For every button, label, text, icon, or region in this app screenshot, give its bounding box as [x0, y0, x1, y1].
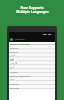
button[interactable]: Bahasa Indonesia [9, 73, 55, 77]
staticText: عربي [10, 54, 16, 57]
button[interactable]: Türkçe [9, 69, 55, 73]
staticText: Türkçe [10, 70, 18, 73]
staticText: Français [10, 86, 20, 89]
staticText: 9:41 AM [43, 33, 52, 36]
button[interactable]: हिंदी [9, 57, 55, 61]
staticText: বাংলা [10, 78, 14, 80]
staticText: Bahasa Indonesia [10, 74, 30, 77]
button[interactable]: Deutsch [9, 81, 55, 85]
button[interactable]: বাংলা [9, 77, 55, 81]
staticText: اردو [10, 66, 15, 69]
button[interactable]: Select Language [9, 42, 55, 45]
staticText: Multiple Languages [16, 9, 49, 13]
button[interactable]: اردو [9, 65, 55, 69]
staticText: Select Language [10, 42, 30, 45]
button[interactable]: عربي [9, 53, 55, 57]
staticText: Now Supports [20, 5, 44, 9]
button[interactable]: App icon [10, 38, 13, 41]
button[interactable]: Français [9, 85, 55, 89]
staticText: فارسی [10, 62, 18, 65]
staticText: हिंदी [10, 58, 14, 61]
button[interactable]: English [9, 49, 55, 53]
staticText: Languages [14, 38, 26, 41]
staticText: English [10, 46, 19, 49]
staticText: Deutsch [10, 82, 20, 85]
button[interactable]: فارسی [9, 61, 55, 65]
button[interactable]: English [9, 45, 55, 49]
staticText: English [10, 50, 19, 53]
